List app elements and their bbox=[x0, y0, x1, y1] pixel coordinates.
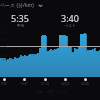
button[interactable]: 5:35 bbox=[0, 12, 40, 27]
button[interactable]: ペース (分/km) bbox=[0, 0, 100, 10]
staticText: 3:40 bbox=[61, 12, 79, 24]
staticText: 10:41 bbox=[15, 82, 33, 86]
staticText: 42:46 bbox=[76, 82, 94, 86]
staticText: 5:35 bbox=[11, 12, 29, 24]
staticText: 5:30 bbox=[0, 46, 6, 50]
staticText: 平均 bbox=[17, 24, 24, 27]
other: Change metric bbox=[38, 3, 43, 8]
staticText: 21:23 bbox=[36, 82, 54, 86]
button[interactable]: 3:40 bbox=[40, 12, 100, 27]
staticText: 32:04 bbox=[56, 82, 74, 86]
staticText: ペース (分/km) bbox=[0, 2, 34, 9]
staticText: 0:00 bbox=[0, 82, 13, 86]
button[interactable]: 詳細 分割 ラップ bbox=[36, 89, 68, 94]
staticText: ベスト bbox=[65, 24, 76, 27]
